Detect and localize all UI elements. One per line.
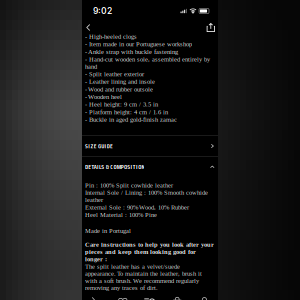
staticText: DETAILS & COMPOSITION [85,162,144,172]
staticText: - High-heeled clogs [85,33,137,40]
button[interactable]: Bag [164,292,191,300]
staticText: - Ankle strap with buckle fastening [85,48,178,55]
button[interactable]: DETAILS & COMPOSITION [82,157,218,177]
staticText: Care instructions to help you look after… [85,241,214,263]
staticText: - Heel height: 9 cm / 3.5 in [85,101,158,108]
staticText: - Item made in our Portuguese workshop [85,41,192,48]
staticText: - Wood and rubber outsole [85,86,153,93]
staticText: Made in Portugal [85,227,131,234]
button[interactable]: Inspiration [82,292,109,300]
staticText: Pin : 100% Split cowhide leather [85,182,173,189]
staticText: The split leather has a velvet/suede app… [85,263,213,291]
button[interactable]: SIZE GUIDE [82,136,218,156]
staticText: Internal Sole / Lining : 100% Smooth cow… [85,189,208,203]
button[interactable]: Share [204,22,218,33]
staticText: Heel Material : 100% Pine [85,211,157,218]
staticText: - Platform height: 4 cm / 1.6 in [85,108,168,116]
button[interactable]: Account [191,292,218,300]
staticText: - Buckle in aged gold-finish zamac [85,116,177,123]
button[interactable]: Back [82,22,95,33]
staticText: - Wooden heel [85,93,122,100]
staticText: SIZE GUIDE [85,141,113,151]
staticText: - Leather lining and insole [85,78,155,85]
staticText: External Sole : 90% Wood, 10% Rubber [85,204,189,211]
button[interactable]: Search [136,292,164,300]
button[interactable]: Favourites [109,292,136,300]
staticText: 9:02 [93,6,112,16]
staticText: - Hand-cut wooden sole, assembled entire… [85,56,210,70]
staticText: - Split leather exterior [85,70,144,78]
